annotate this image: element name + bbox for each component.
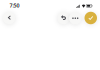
- button[interactable]: Undo: [57, 12, 70, 24]
- button[interactable]: More options: [69, 12, 81, 24]
- button[interactable]: Done: [84, 12, 97, 24]
- staticText: 7:50: [9, 2, 19, 9]
- button[interactable]: Back: [3, 12, 15, 24]
